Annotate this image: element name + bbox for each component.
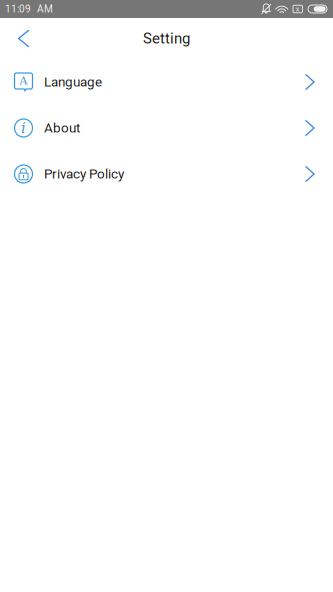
staticText: Language — [44, 74, 102, 90]
staticText: About — [44, 120, 80, 136]
button[interactable]: Back — [0, 19, 40, 57]
staticText: x — [296, 5, 300, 13]
staticText: i — [21, 119, 26, 137]
staticText: Setting — [143, 30, 190, 47]
staticText: 11:09 AM — [5, 3, 53, 15]
staticText: Privacy Policy — [44, 166, 124, 182]
button[interactable]: A — [0, 59, 333, 105]
button[interactable]: Privacy Policy — [0, 151, 333, 197]
staticText: A — [19, 74, 27, 87]
button[interactable]: i — [0, 105, 333, 151]
